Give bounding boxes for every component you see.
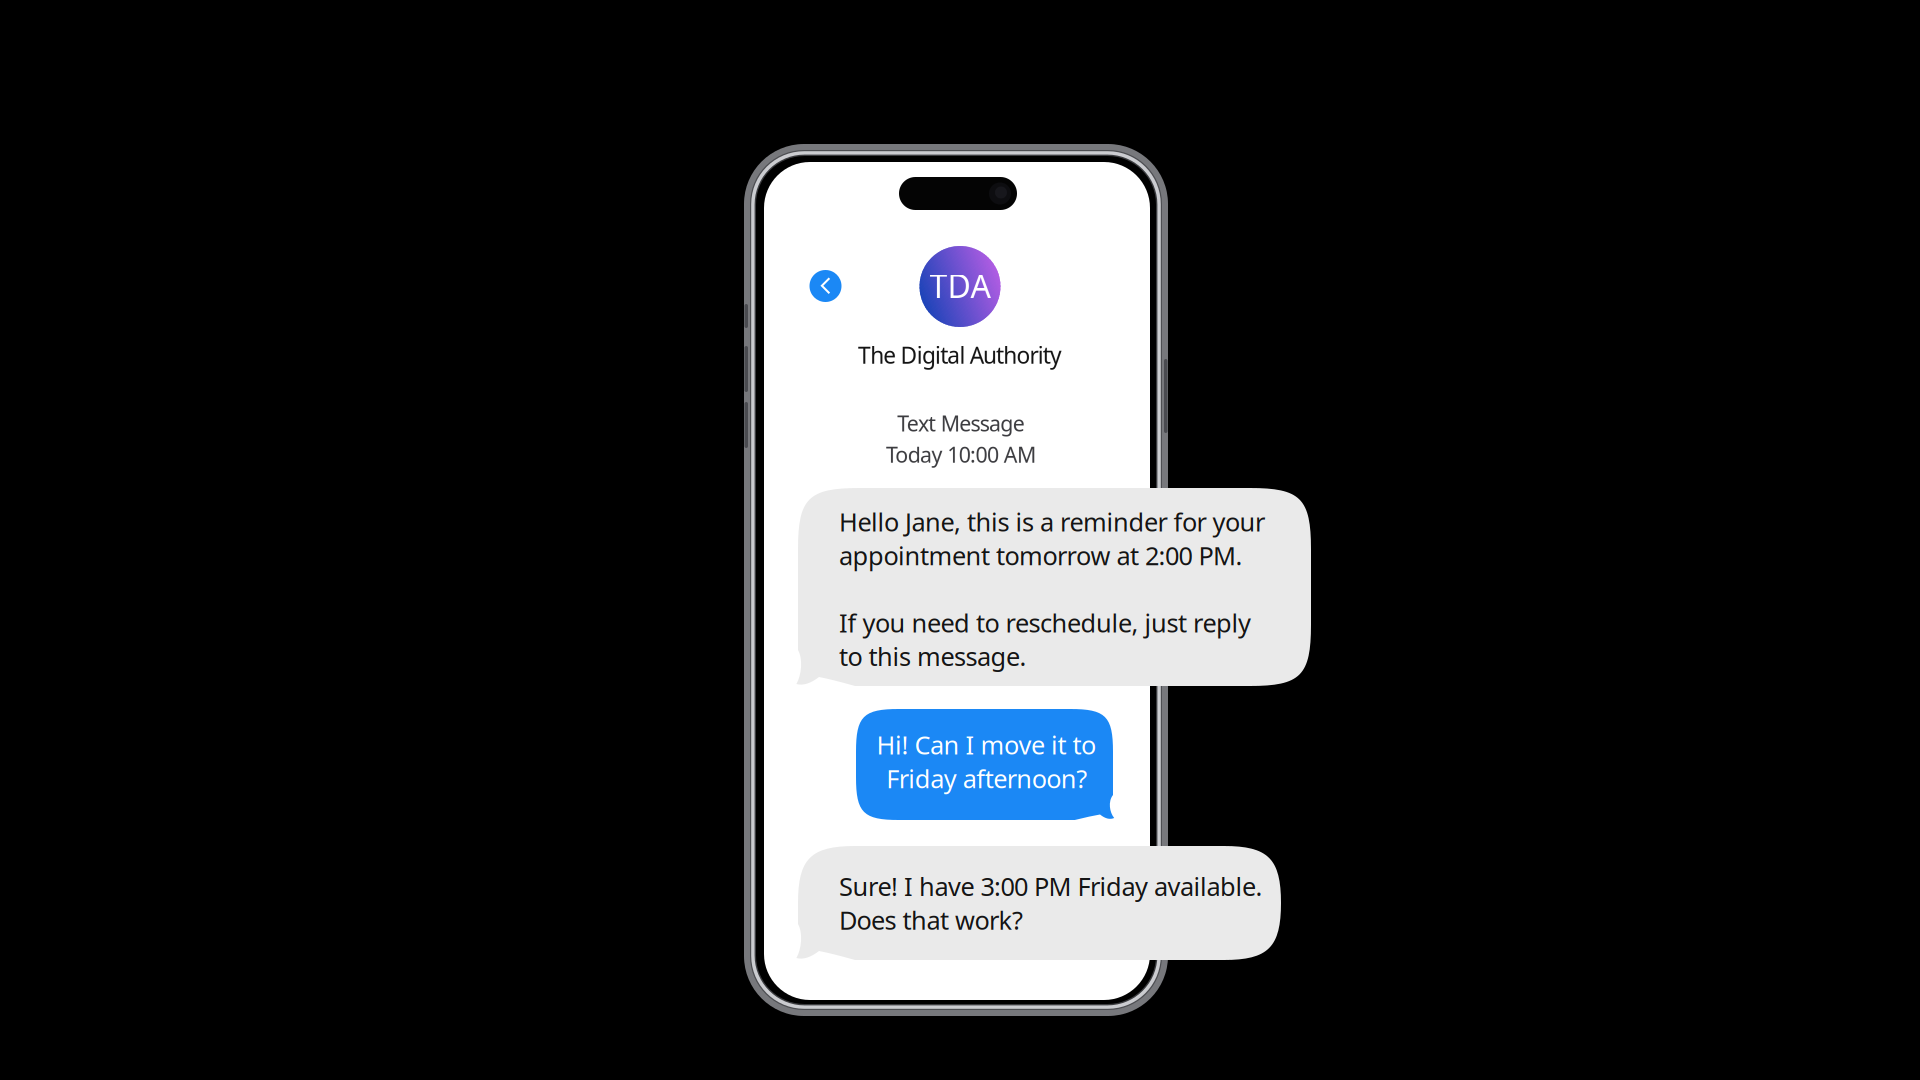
- button[interactable]: Back: [809, 270, 841, 302]
- staticText: The Digital Authority: [858, 340, 1062, 370]
- staticText: Today 10:00 AM: [886, 440, 1036, 469]
- staticText: Hi! Can I move it to Friday afternoon?: [876, 728, 1096, 795]
- staticText: Text Message: [897, 409, 1025, 437]
- staticText: TDA: [929, 264, 990, 307]
- staticText: Hello Jane, this is a reminder for your …: [839, 505, 1265, 673]
- staticText: Sure! I have 3:00 PM Friday available. D…: [839, 869, 1262, 937]
